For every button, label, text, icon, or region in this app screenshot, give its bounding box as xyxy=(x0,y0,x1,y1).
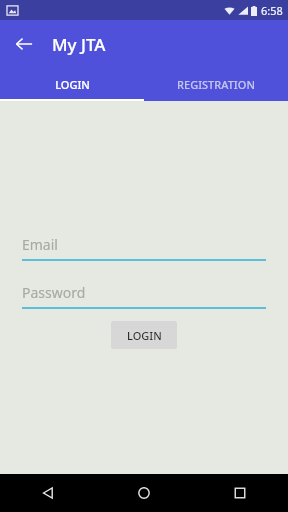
button[interactable]: LOGIN xyxy=(111,321,177,349)
button[interactable]: Recents xyxy=(192,474,288,512)
button[interactable]: LOGIN xyxy=(0,68,144,101)
button[interactable]: Password xyxy=(22,283,266,309)
button[interactable]: Home xyxy=(96,474,192,512)
staticText: LOGIN xyxy=(55,77,90,92)
staticText: LOGIN xyxy=(127,328,162,343)
staticText: 6:58 xyxy=(261,3,283,18)
staticText: Email xyxy=(22,235,58,254)
staticText: My JTA xyxy=(52,33,106,56)
staticText: REGISTRATION xyxy=(177,77,255,92)
button[interactable]: REGISTRATION xyxy=(144,68,288,101)
button[interactable]: Back xyxy=(8,28,40,60)
staticText: Password xyxy=(22,283,86,302)
button[interactable]: Back xyxy=(0,474,96,512)
button[interactable]: Email xyxy=(22,235,266,261)
